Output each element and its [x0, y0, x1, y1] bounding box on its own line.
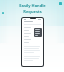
- button[interactable]: Accent: [2, 12, 4, 14]
- button[interactable]: Badge: [59, 2, 62, 5]
- button[interactable]: Menu: [34, 28, 42, 37]
- staticText: Easily Handle: [19, 3, 46, 8]
- button[interactable]: Menu: [22, 18, 43, 66]
- staticText: Requests: [23, 9, 42, 14]
